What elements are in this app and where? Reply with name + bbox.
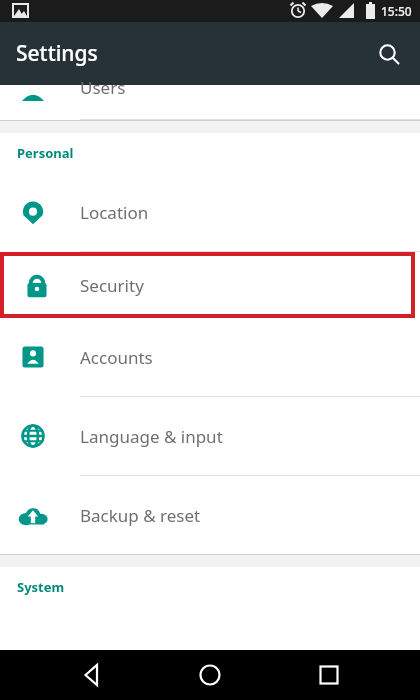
staticText: Location [80, 201, 149, 224]
staticText: 15:50 [381, 3, 412, 19]
button[interactable]: Users [0, 85, 420, 120]
button[interactable]: Accounts [0, 318, 420, 396]
staticText: Settings [16, 39, 98, 68]
button[interactable]: Backup & reset [0, 476, 420, 554]
staticText: Backup & reset [80, 504, 201, 527]
staticText: Accounts [80, 346, 153, 369]
button[interactable]: Back [65, 650, 119, 700]
button[interactable]: Home [183, 650, 237, 700]
button[interactable]: Location [0, 173, 420, 251]
staticText: System [17, 578, 65, 596]
button[interactable]: Security [4, 256, 411, 314]
staticText: Language & input [80, 425, 223, 448]
button[interactable]: Language & input [0, 397, 420, 475]
staticText: Users [80, 76, 126, 99]
staticText: Security [80, 274, 144, 297]
staticText: Personal [17, 144, 74, 162]
button[interactable]: Search [366, 31, 412, 77]
button[interactable]: Recent apps [302, 650, 356, 700]
